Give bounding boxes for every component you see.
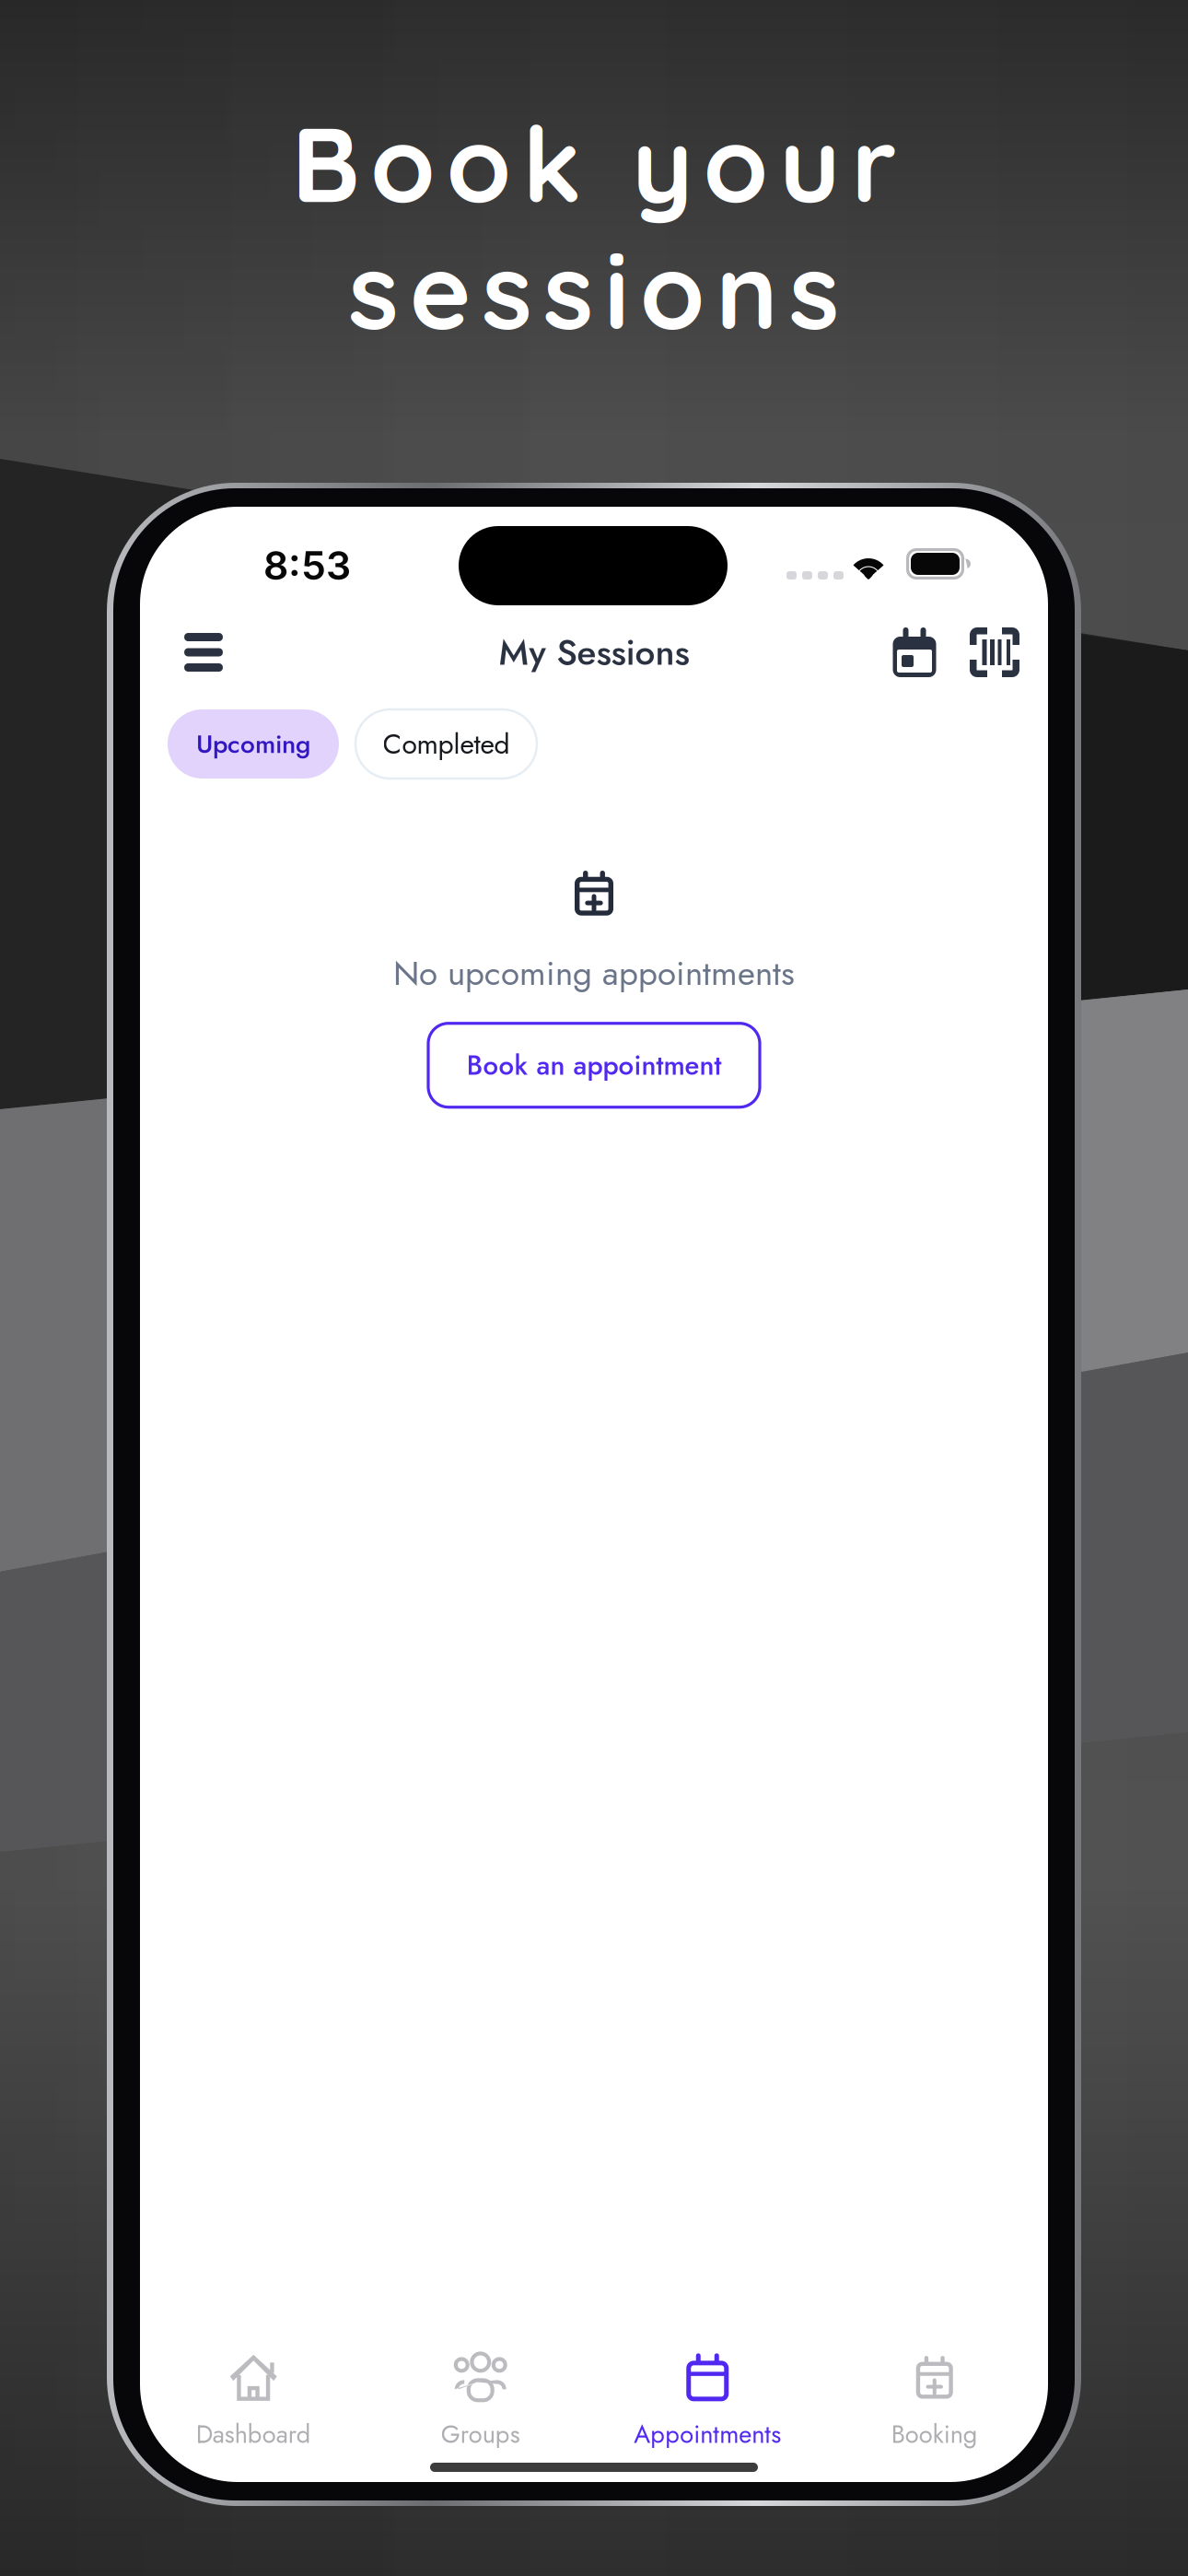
button[interactable]: Book an appointment bbox=[428, 1023, 760, 1107]
staticText: My Sessions bbox=[499, 627, 689, 678]
staticText: Upcoming bbox=[196, 725, 310, 763]
button[interactable]: Groups bbox=[367, 2341, 594, 2463]
staticText: No upcoming appointments bbox=[393, 949, 795, 998]
button[interactable]: Dashboard bbox=[140, 2341, 367, 2463]
staticText: sessions bbox=[348, 225, 840, 355]
staticText: Dashboard bbox=[196, 2416, 311, 2452]
staticText: Appointments bbox=[634, 2416, 781, 2452]
button[interactable]: Menu bbox=[158, 609, 249, 696]
button[interactable]: Scan code bbox=[954, 609, 1035, 696]
button[interactable]: Booking bbox=[821, 2341, 1048, 2463]
staticText: 8:53 bbox=[263, 542, 351, 589]
staticText: Book your bbox=[291, 98, 897, 228]
staticText: Groups bbox=[441, 2416, 520, 2452]
staticText: Book an appointment bbox=[466, 1046, 722, 1085]
staticText: Booking bbox=[891, 2416, 978, 2452]
staticText: Completed bbox=[383, 724, 510, 764]
button[interactable]: Upcoming bbox=[168, 709, 339, 779]
button[interactable]: Calendar bbox=[875, 609, 954, 696]
button[interactable]: Completed bbox=[355, 709, 537, 779]
button[interactable]: Appointments bbox=[594, 2341, 821, 2463]
